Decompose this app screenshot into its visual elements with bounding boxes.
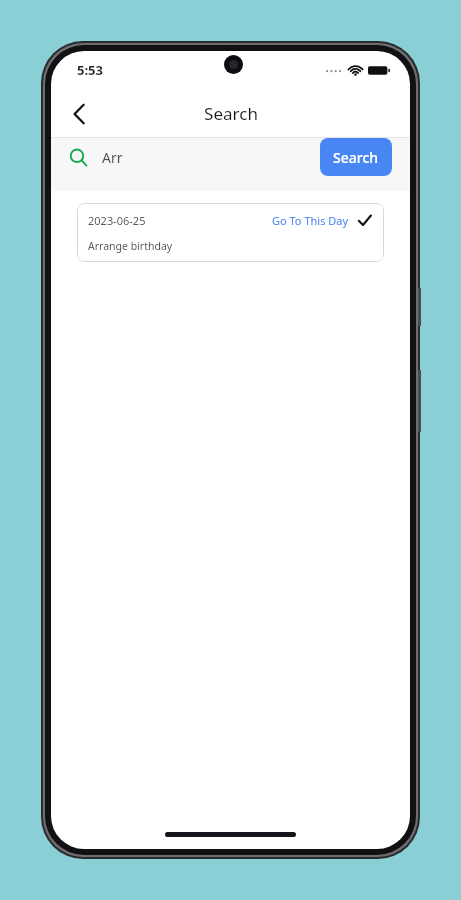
staticText: Search: [204, 102, 258, 125]
button[interactable]: Done: [356, 212, 373, 229]
staticText: Search: [333, 148, 379, 167]
staticText: Go To This Day: [272, 213, 349, 228]
button[interactable]: Arr: [69, 148, 320, 167]
staticText: Arr: [102, 148, 123, 167]
staticText: Arrange birthday: [88, 239, 173, 253]
button[interactable]: Back: [59, 94, 99, 134]
button[interactable]: Search: [320, 138, 392, 176]
staticText: 5:53: [77, 61, 103, 79]
button[interactable]: Go To This Day: [272, 213, 349, 228]
staticText: 2023-06-25: [88, 213, 146, 228]
button[interactable]: 2023-06-25: [77, 203, 384, 262]
